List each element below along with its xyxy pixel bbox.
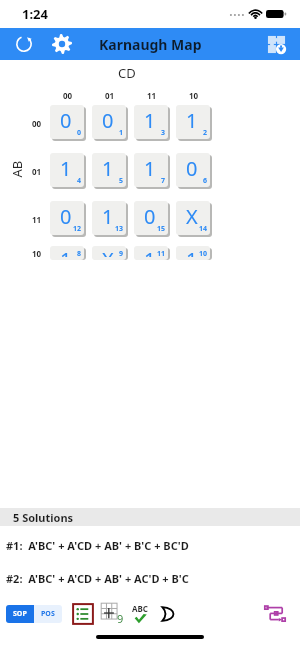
button[interactable]: Settings (46, 28, 78, 60)
button[interactable]: 1 (134, 246, 170, 260)
button[interactable]: 1 (50, 246, 86, 260)
button[interactable]: 1 (92, 201, 128, 237)
button[interactable]: #1: A'BC' + A'CD + AB' + B'C + BC'D (6, 538, 189, 553)
staticText: 1 (60, 155, 72, 182)
staticText: AB (7, 160, 25, 177)
staticText: 00 (32, 118, 42, 129)
staticText: 00 (63, 90, 73, 101)
staticText: X (102, 246, 114, 257)
staticText: 7 (161, 176, 166, 186)
staticText: 0 (186, 155, 198, 182)
button[interactable]: Truth table (100, 602, 124, 626)
button[interactable]: 0 (50, 201, 86, 237)
staticText: 5 (119, 176, 124, 186)
staticText: 0 (60, 203, 72, 230)
staticText: 9 (117, 611, 124, 626)
button[interactable]: SOP (6, 605, 62, 623)
button[interactable]: Export (260, 28, 292, 60)
staticText: 1 (60, 246, 72, 257)
staticText: X (186, 203, 198, 230)
staticText: POS (41, 609, 55, 619)
staticText: 1 (102, 203, 114, 230)
button[interactable]: 0 (134, 201, 170, 237)
staticText: 1 (119, 128, 124, 138)
staticText: 11 (157, 249, 166, 259)
staticText: 14 (199, 224, 208, 234)
staticText: 0 (77, 128, 82, 138)
staticText: SOP (13, 609, 27, 619)
staticText: 1 (144, 155, 156, 182)
button[interactable]: 0 (50, 105, 86, 141)
staticText: 10 (199, 249, 208, 259)
button[interactable]: Verify expression (128, 602, 152, 626)
button[interactable]: X (176, 201, 212, 237)
staticText: 1:24 (22, 5, 48, 23)
staticText: 3 (161, 128, 166, 138)
staticText: 11 (147, 90, 157, 101)
staticText: 8 (77, 249, 82, 259)
staticText: 15 (157, 224, 166, 234)
button[interactable]: 1 (134, 105, 170, 141)
staticText: 1 (186, 107, 198, 134)
button[interactable]: 1 (176, 105, 212, 141)
staticText: 5 Solutions (13, 510, 74, 525)
staticText: ABC (132, 603, 148, 614)
staticText: 1 (144, 246, 156, 257)
button[interactable]: Logic gate diagram (156, 603, 184, 625)
staticText: 01 (32, 166, 42, 177)
button[interactable]: Circuit diagram (262, 601, 288, 627)
button[interactable]: #2: A'BC' + A'CD + AB' + AC'D + B'C (6, 571, 189, 586)
staticText: Karnaugh Map (99, 35, 202, 54)
staticText: 0 (102, 107, 114, 134)
staticText: 6 (203, 176, 208, 186)
staticText: 10 (189, 90, 199, 101)
button[interactable]: Refresh (8, 28, 40, 60)
staticText: 10 (32, 248, 42, 259)
staticText: 01 (105, 90, 115, 101)
staticText: 9 (119, 249, 124, 259)
staticText: 4 (77, 176, 82, 186)
button[interactable]: 0 (176, 153, 212, 189)
staticText: 1 (144, 107, 156, 134)
staticText: 0 (60, 107, 72, 134)
staticText: 1 (102, 155, 114, 182)
staticText: 13 (115, 224, 124, 234)
staticText: 11 (32, 214, 42, 225)
button[interactable]: Solution list (72, 603, 94, 625)
button[interactable]: 1 (134, 153, 170, 189)
staticText: 2 (203, 128, 208, 138)
button[interactable]: 1 (92, 153, 128, 189)
staticText: 0 (144, 203, 156, 230)
button[interactable]: 0 (92, 105, 128, 141)
button[interactable]: 1 (50, 153, 86, 189)
button[interactable]: 1 (176, 246, 212, 260)
staticText: CD (118, 64, 136, 82)
staticText: 1 (186, 246, 198, 257)
staticText: 12 (73, 224, 82, 234)
button[interactable]: X (92, 246, 128, 260)
